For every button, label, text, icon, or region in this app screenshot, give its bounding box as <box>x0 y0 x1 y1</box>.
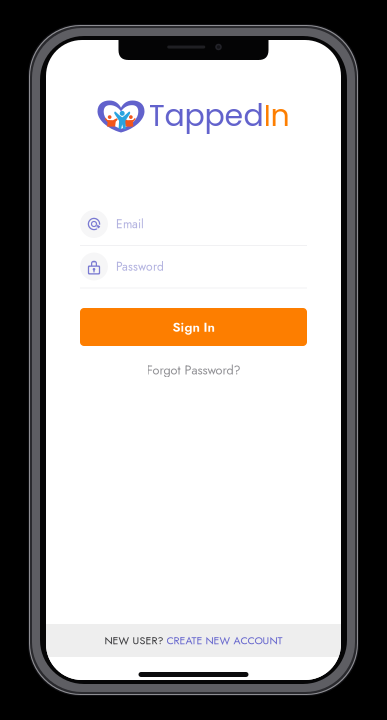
button[interactable]: Sign In <box>80 308 307 346</box>
staticText: NEW USER? <box>104 633 163 648</box>
staticText: Tapped <box>148 94 263 136</box>
staticText: Sign In <box>172 317 214 337</box>
staticText: In <box>263 94 289 136</box>
button[interactable]: NEW USER? <box>46 624 341 657</box>
staticText: Email <box>116 215 144 233</box>
staticText: Password <box>116 258 164 275</box>
staticText: CREATE NEW ACCOUNT <box>166 633 282 648</box>
button[interactable]: Forgot Password? <box>80 359 307 381</box>
staticText: Forgot Password? <box>146 361 240 379</box>
